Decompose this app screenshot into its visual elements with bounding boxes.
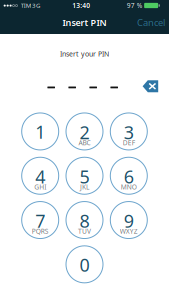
button[interactable]: 1 bbox=[22, 113, 59, 150]
staticText: 2 bbox=[79, 120, 89, 144]
staticText: 1 bbox=[35, 119, 45, 144]
staticText: DEF bbox=[123, 138, 135, 147]
staticText: Insert your PIN bbox=[60, 49, 109, 58]
staticText: 0 bbox=[79, 252, 89, 277]
staticText: 4 bbox=[35, 164, 45, 189]
staticText: 7 bbox=[35, 209, 45, 233]
staticText: Cancel bbox=[137, 16, 165, 29]
button[interactable]: Cancel bbox=[134, 12, 168, 33]
button[interactable]: 8 bbox=[66, 201, 103, 238]
staticText: GHI bbox=[34, 182, 46, 191]
staticText: 6 bbox=[124, 164, 134, 189]
button[interactable]: 5 bbox=[66, 157, 103, 194]
staticText: 5 bbox=[79, 164, 89, 189]
staticText: PQRS bbox=[32, 227, 49, 236]
button[interactable]: Delete bbox=[143, 80, 158, 92]
staticText: ABC bbox=[78, 138, 90, 147]
staticText: 3G bbox=[32, 1, 40, 10]
staticText: TIM bbox=[21, 1, 32, 10]
staticText: 9 bbox=[124, 209, 134, 233]
button[interactable]: 2 bbox=[66, 113, 103, 150]
button[interactable]: 7 bbox=[22, 201, 59, 238]
button[interactable]: 4 bbox=[22, 157, 59, 194]
staticText: JKL bbox=[80, 182, 89, 191]
staticText: TUV bbox=[78, 227, 91, 236]
staticText: 3 bbox=[124, 120, 134, 144]
staticText: 13:40 bbox=[72, 1, 90, 10]
staticText: WXYZ bbox=[120, 227, 138, 236]
staticText: MNO bbox=[121, 182, 137, 191]
staticText: 97 % bbox=[127, 1, 143, 10]
button[interactable]: 3 bbox=[110, 113, 147, 150]
button[interactable]: 9 bbox=[110, 201, 147, 238]
button[interactable]: 6 bbox=[110, 157, 147, 194]
staticText: Insert PIN bbox=[62, 16, 106, 29]
button[interactable]: 0 bbox=[66, 246, 103, 283]
staticText: 8 bbox=[79, 209, 89, 233]
